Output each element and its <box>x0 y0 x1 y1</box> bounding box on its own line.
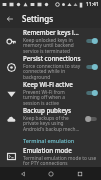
staticText: Terminal emulation <box>23 137 75 144</box>
other: Persist <box>7 63 16 72</box>
staticText: 11:41 <box>86 1 99 8</box>
staticText: Settings <box>22 13 54 24</box>
button[interactable]: Back <box>3 12 17 26</box>
staticText: Keep Wi-Fi active <box>23 80 73 88</box>
staticText: Keep unlocked keys in memory until backe… <box>23 37 81 54</box>
button[interactable]: Toggle on <box>84 36 98 46</box>
staticText: Prevent Wi-Fi from turning off when a se… <box>23 89 81 106</box>
button[interactable]: Recents <box>73 167 86 180</box>
button[interactable]: Key <box>0 28 101 54</box>
other: Terminal <box>7 152 16 161</box>
staticText: Persist connections <box>23 54 81 62</box>
other: Wi-Fi <box>7 89 16 98</box>
button[interactable]: Wi-Fi <box>0 80 101 106</box>
button[interactable]: Toggle on <box>84 88 98 98</box>
button[interactable]: Toggle off <box>84 114 98 124</box>
staticText: Remember keys in memory <box>23 28 81 36</box>
button[interactable]: Toggle on <box>84 62 98 72</box>
button[interactable]: Persist <box>0 54 101 80</box>
button[interactable]: Back <box>16 167 29 180</box>
staticText: Keep backups of the private keys using A… <box>23 115 81 132</box>
button[interactable]: Home <box>44 167 57 180</box>
staticText: Force connections to stay connected whil… <box>23 63 81 80</box>
other: Cloud <box>7 115 16 124</box>
staticText: Backup pubkeys <box>23 106 72 114</box>
button[interactable]: Cloud <box>0 106 101 132</box>
staticText: Emulation mode <box>23 146 72 154</box>
button[interactable]: Terminal <box>0 145 101 167</box>
other: Key <box>7 37 16 46</box>
staticText: Terminal emulation mode to use for PTY c… <box>23 155 98 167</box>
